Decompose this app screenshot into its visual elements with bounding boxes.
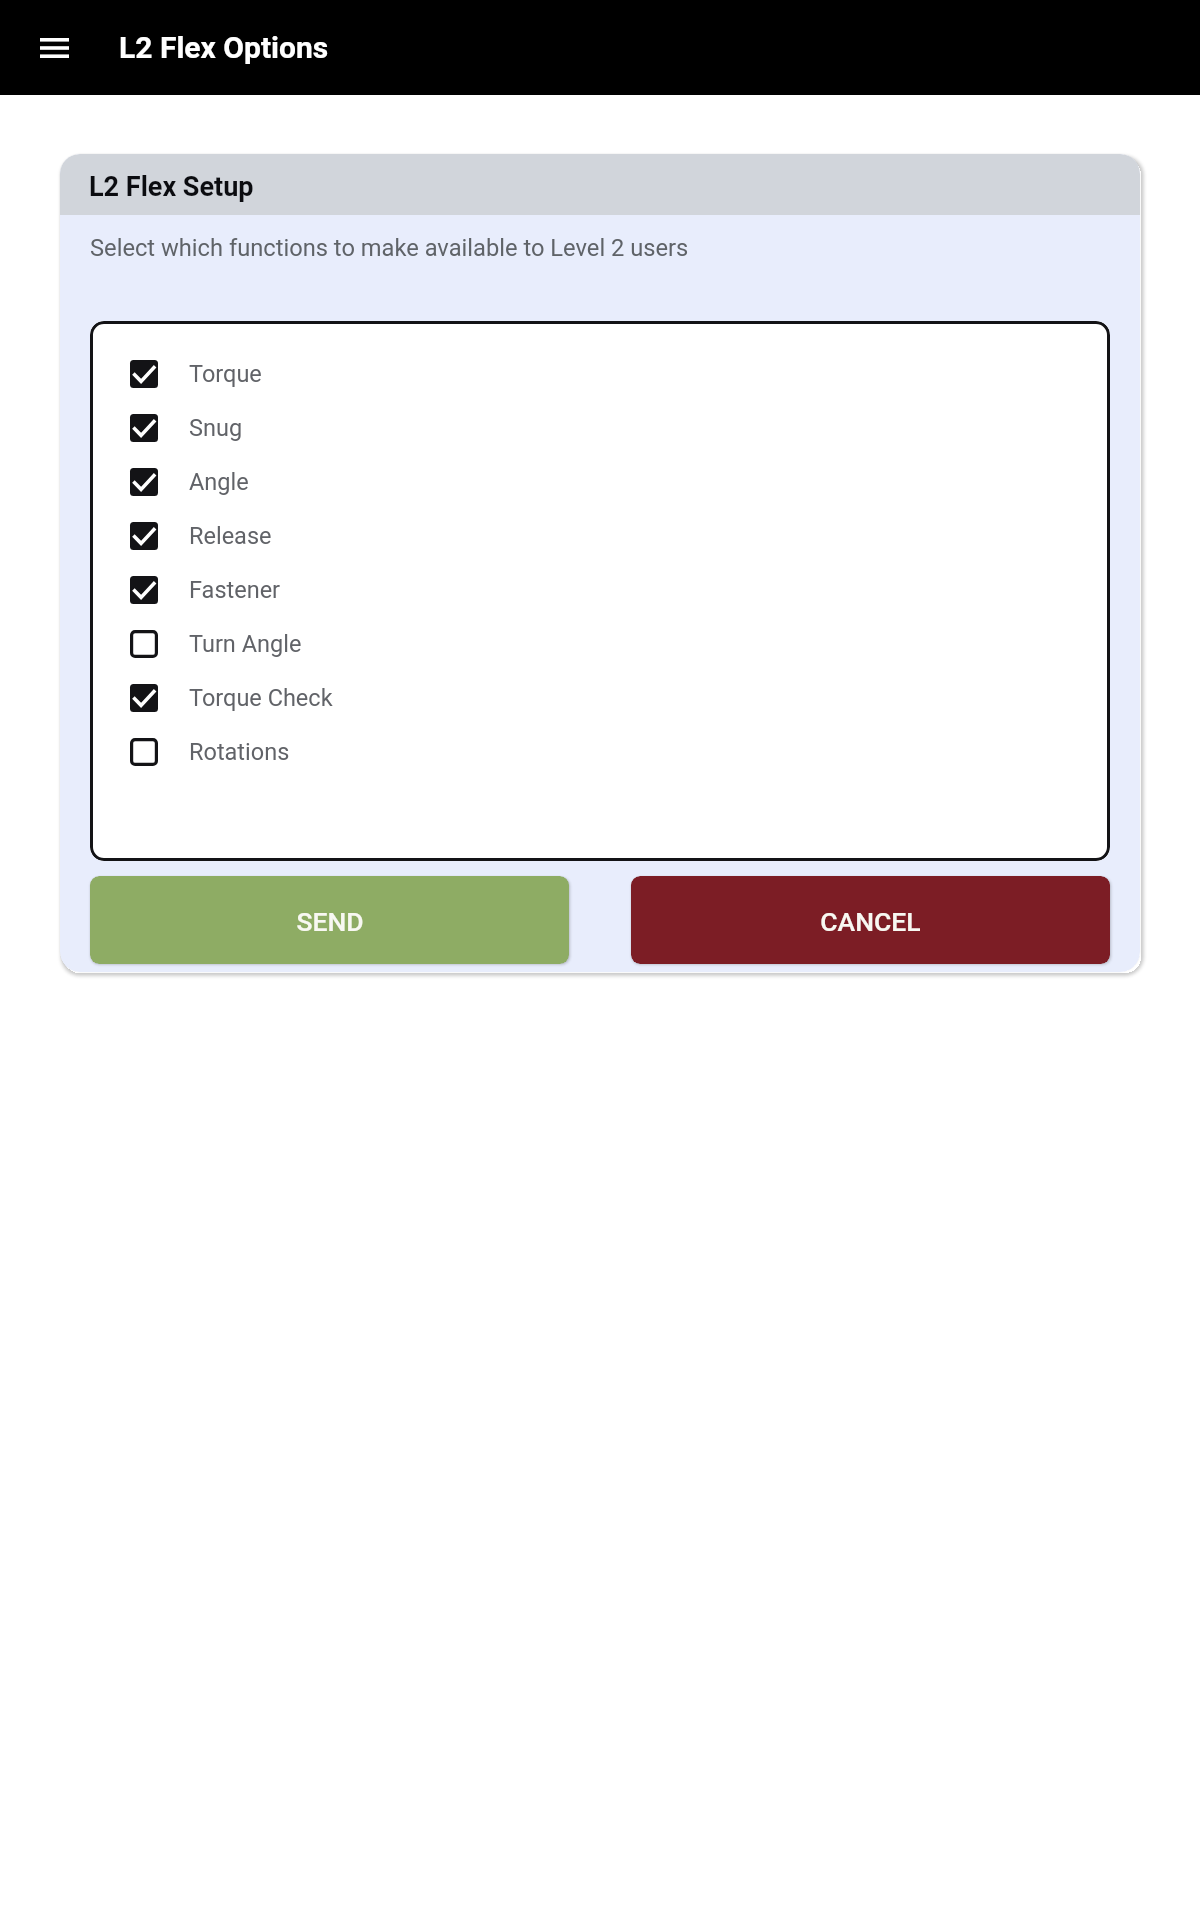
staticText: L2 Flex Setup xyxy=(89,171,254,203)
button[interactable]: Torque xyxy=(90,347,1110,401)
button[interactable]: SEND xyxy=(90,876,569,964)
button[interactable]: Angle xyxy=(90,455,1110,509)
staticText: Angle xyxy=(189,468,249,496)
staticText: Rotations xyxy=(189,738,290,766)
button[interactable]: Release xyxy=(90,509,1110,563)
staticText: L2 Flex Options xyxy=(119,30,329,65)
staticText: Torque xyxy=(189,360,262,388)
button[interactable]: Open navigation menu xyxy=(25,19,83,77)
button[interactable]: Rotations xyxy=(90,725,1110,779)
staticText: Turn Angle xyxy=(189,630,302,658)
staticText: Snug xyxy=(189,414,243,442)
button[interactable]: Fastener xyxy=(90,563,1110,617)
button[interactable]: Turn Angle xyxy=(90,617,1110,671)
staticText: SEND xyxy=(296,906,364,937)
button[interactable]: CANCEL xyxy=(631,876,1110,964)
staticText: CANCEL xyxy=(820,906,921,937)
staticText: Release xyxy=(189,522,272,550)
button[interactable]: Snug xyxy=(90,401,1110,455)
staticText: Select which functions to make available… xyxy=(90,234,689,262)
button[interactable]: Torque Check xyxy=(90,671,1110,725)
staticText: Torque Check xyxy=(189,684,333,712)
staticText: Fastener xyxy=(189,576,281,604)
